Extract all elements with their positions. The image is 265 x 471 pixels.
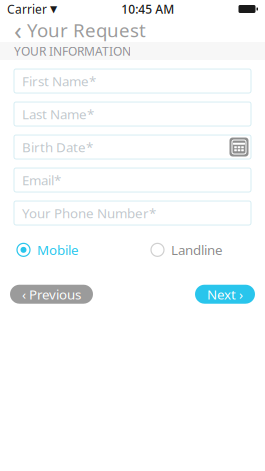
staticText: ‹ bbox=[14, 13, 22, 47]
button[interactable]: Mobile bbox=[17, 237, 79, 263]
staticText: Last Name* bbox=[22, 105, 94, 123]
staticText: › bbox=[239, 285, 243, 303]
staticText: First Name* bbox=[22, 72, 96, 90]
staticText: Next bbox=[207, 285, 236, 303]
staticText: Landline bbox=[171, 241, 223, 259]
staticText: Email* bbox=[22, 171, 61, 189]
button[interactable]: Choose birth date bbox=[227, 135, 251, 159]
staticText: Previous bbox=[29, 285, 81, 303]
staticText: ‹ bbox=[22, 285, 26, 303]
button[interactable]: Landline bbox=[151, 237, 223, 263]
staticText: 10:45 AM bbox=[121, 1, 174, 17]
staticText: YOUR INFORMATION bbox=[14, 43, 131, 59]
staticText: ▼ bbox=[50, 4, 57, 14]
staticText: Birth Date* bbox=[22, 138, 93, 156]
staticText: Carrier bbox=[7, 1, 47, 17]
button[interactable]: ‹ bbox=[0, 9, 146, 51]
button[interactable]: Next bbox=[195, 285, 255, 304]
staticText: Your Request bbox=[27, 18, 146, 42]
staticText: Your Phone Number* bbox=[22, 204, 156, 222]
button[interactable]: ‹ bbox=[10, 285, 93, 304]
staticText: Mobile bbox=[37, 241, 79, 259]
